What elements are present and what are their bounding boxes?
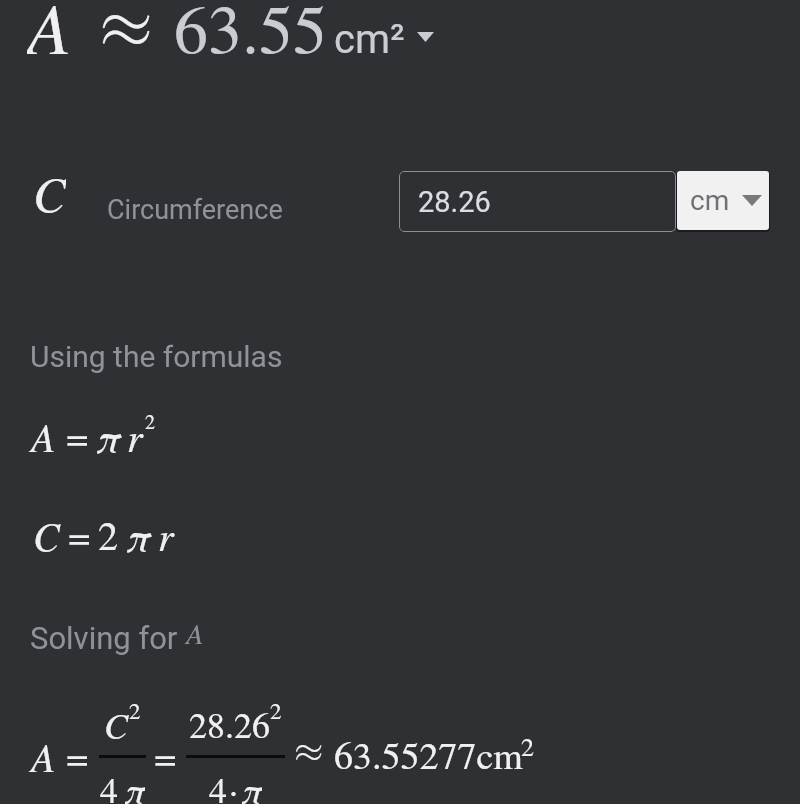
staticText: = [66,729,89,782]
staticText: ≈ [99,0,154,61]
staticText: · [229,765,238,804]
staticText: = [68,508,91,561]
staticText: cm² [334,16,405,63]
staticText: r [158,508,174,562]
staticText: 2 [270,695,282,726]
staticText: = [66,409,89,462]
staticText: C [104,700,129,748]
button[interactable]: Change unit [412,24,438,50]
staticText: 2 [98,508,118,561]
staticText: 4 [100,765,118,804]
staticText: ≈ [294,731,324,769]
staticText: A [27,0,71,67]
staticText: Using the formulas [30,339,283,374]
staticText: 28.26 [418,185,491,219]
staticText: 63.55 [174,0,328,71]
staticText: 63.55277cm [334,729,523,780]
staticText: cm [690,184,730,217]
staticText: C [33,508,60,562]
staticText: π [95,409,120,463]
staticText: 2 [129,695,141,726]
staticText: Solving for [30,620,186,656]
staticText: 4 [209,765,227,804]
staticText: A [186,613,204,652]
staticText: π [240,765,262,804]
staticText: A [31,729,56,783]
staticText: A [31,409,56,463]
staticText: 28.26 [189,700,270,748]
staticText: 2 [521,729,535,764]
staticText: 2 [145,408,155,435]
staticText: Circumference [107,194,283,226]
staticText: π [123,765,145,804]
button[interactable]: cm [677,171,769,230]
button[interactable]: 28.26 [399,171,676,232]
staticText: C [33,160,66,222]
staticText: r [127,409,143,463]
staticText: = [154,729,177,782]
staticText: π [125,508,150,562]
